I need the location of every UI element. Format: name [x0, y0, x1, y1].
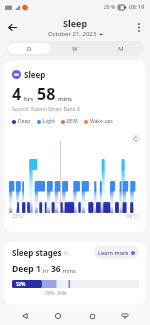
staticText: REM: [67, 118, 78, 125]
staticText: Deep: [18, 118, 31, 125]
staticText: Sleep: [24, 69, 46, 80]
staticText: hrs: [24, 95, 34, 103]
staticText: 4: [12, 83, 22, 105]
staticText: mins: [58, 95, 72, 103]
button[interactable]: Recents: [83, 307, 101, 325]
staticText: 32%: [16, 281, 26, 287]
button[interactable]: D: [8, 43, 50, 54]
button[interactable]: More options: [131, 19, 147, 35]
staticText: 39% - 64%: [45, 290, 67, 296]
button[interactable]: Hide keyboard: [116, 307, 134, 325]
staticText: mins: [63, 267, 76, 274]
staticText: hr: [43, 267, 49, 274]
staticText: Sleep: [63, 17, 88, 29]
button[interactable]: W: [54, 43, 96, 54]
staticText: 26 %: [104, 4, 116, 11]
staticText: M: [118, 45, 124, 53]
staticText: October 21, 2023: [48, 30, 97, 38]
staticText: Wake-ups: [90, 118, 114, 125]
button[interactable]: Home: [49, 307, 67, 325]
button[interactable]: Back: [3, 18, 21, 36]
button[interactable]: Refresh: [131, 134, 141, 144]
staticText: Learn more: [98, 249, 129, 256]
staticText: Source: Xiaomi Smart Band 8: [12, 106, 80, 113]
button[interactable]: Back: [16, 307, 34, 325]
staticText: Deep 1: [12, 263, 41, 275]
staticText: 06:11: [127, 213, 139, 219]
staticText: D: [27, 45, 32, 53]
staticText: Light: [43, 118, 55, 125]
staticText: 23:12: [12, 213, 24, 219]
button[interactable]: Learn more: [94, 246, 139, 259]
staticText: 08:19: [129, 3, 145, 11]
staticText: 36: [51, 263, 61, 275]
button[interactable]: M: [100, 43, 142, 54]
staticText: 58: [37, 83, 56, 105]
staticText: Sleep stages: [12, 247, 62, 258]
staticText: W: [72, 45, 78, 53]
